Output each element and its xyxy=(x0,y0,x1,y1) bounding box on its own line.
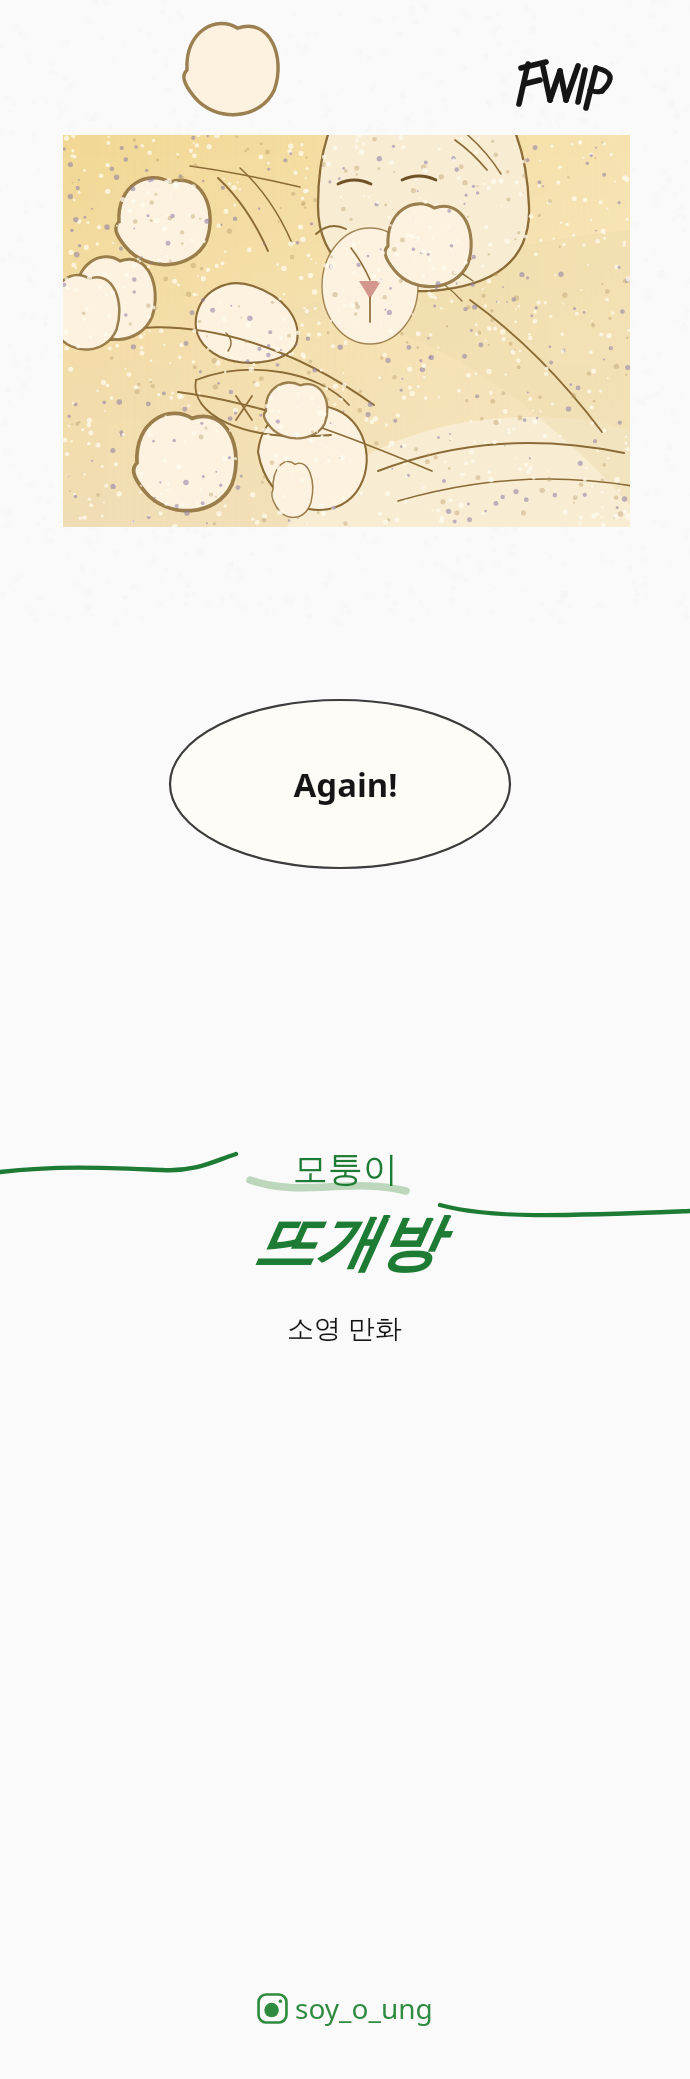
staticText: soy_o_ung xyxy=(295,1989,433,2027)
button[interactable]: Instagram xyxy=(257,1989,433,2027)
staticText: Again! xyxy=(293,762,398,807)
button[interactable]: Again! xyxy=(293,762,398,807)
staticText: 소영 만화 xyxy=(287,1309,403,1346)
other: Instagram xyxy=(257,1993,288,2024)
staticText: 모퉁이 xyxy=(293,1147,398,1191)
staticText: 뜨개방 xyxy=(252,1204,438,1282)
